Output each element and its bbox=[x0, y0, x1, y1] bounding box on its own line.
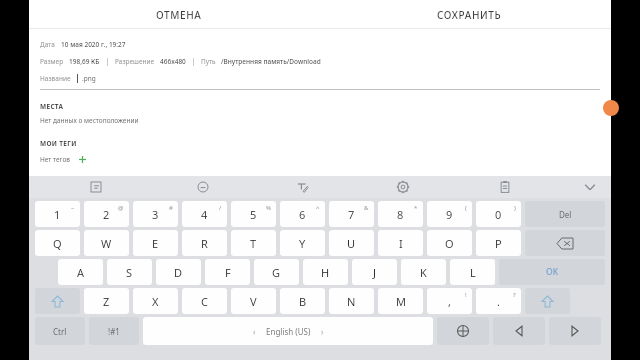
button[interactable]: 5 bbox=[231, 201, 276, 227]
staticText: X bbox=[152, 294, 159, 309]
button[interactable]: 6 bbox=[280, 201, 325, 227]
button[interactable]: O bbox=[427, 230, 472, 256]
button[interactable]: H bbox=[303, 259, 348, 285]
button[interactable]: !#1 bbox=[89, 317, 139, 345]
button[interactable]: ОТМЕНА bbox=[129, 0, 229, 29]
button[interactable]: I bbox=[378, 230, 423, 256]
staticText: Название bbox=[40, 74, 71, 83]
staticText: !#1 bbox=[108, 326, 120, 337]
button[interactable]: 0 bbox=[476, 201, 521, 227]
button[interactable]: D bbox=[156, 259, 201, 285]
staticText: Нет данных о местоположении bbox=[40, 116, 139, 125]
button[interactable]: Q bbox=[35, 230, 80, 256]
button[interactable]: M bbox=[378, 288, 423, 314]
button[interactable]: , bbox=[427, 288, 472, 314]
button[interactable]: U bbox=[329, 230, 374, 256]
button[interactable]: E bbox=[133, 230, 178, 256]
staticText: # bbox=[169, 204, 173, 212]
staticText: V bbox=[250, 294, 257, 309]
button[interactable]: Ctrl bbox=[35, 317, 85, 345]
button[interactable]: ‹ bbox=[143, 317, 433, 345]
staticText: ) bbox=[514, 204, 516, 212]
staticText: ‹ bbox=[253, 326, 256, 337]
button[interactable]: Clipboard bbox=[492, 176, 518, 198]
staticText: ^ bbox=[316, 204, 320, 212]
button[interactable]: . bbox=[476, 288, 521, 314]
button[interactable]: X bbox=[133, 288, 178, 314]
staticText: T bbox=[250, 236, 257, 251]
button[interactable]: V bbox=[231, 288, 276, 314]
staticText: 9 bbox=[446, 207, 453, 222]
staticText: D bbox=[174, 265, 183, 280]
staticText: Y bbox=[299, 236, 306, 251]
staticText: ( bbox=[465, 204, 467, 212]
staticText: СОХРАНИТЬ bbox=[437, 8, 502, 22]
staticText: , bbox=[448, 294, 451, 309]
button[interactable]: Sticker bbox=[83, 176, 109, 198]
staticText: 8 bbox=[397, 207, 404, 222]
button[interactable]: K bbox=[401, 259, 446, 285]
button[interactable]: N bbox=[329, 288, 374, 314]
button[interactable]: A bbox=[58, 259, 103, 285]
staticText: Ctrl bbox=[53, 326, 67, 337]
button[interactable]: P bbox=[476, 230, 521, 256]
button[interactable]: OK bbox=[499, 259, 605, 285]
button[interactable]: J bbox=[352, 259, 397, 285]
button[interactable]: Y bbox=[280, 230, 325, 256]
button[interactable]: S bbox=[107, 259, 152, 285]
button[interactable]: Shift bbox=[35, 288, 80, 314]
staticText: A bbox=[77, 265, 85, 280]
staticText: R bbox=[201, 236, 208, 251]
button[interactable]: Left bbox=[493, 317, 545, 345]
staticText: M bbox=[396, 294, 406, 309]
staticText: Нет тегов bbox=[40, 155, 70, 164]
staticText: OK bbox=[546, 266, 559, 278]
button[interactable]: Emoji bbox=[190, 176, 216, 198]
button[interactable]: BKSP bbox=[525, 230, 605, 256]
staticText: I bbox=[399, 236, 403, 251]
staticText: F bbox=[225, 265, 231, 280]
button[interactable]: Language bbox=[437, 317, 489, 345]
button[interactable]: 1 bbox=[35, 201, 80, 227]
button[interactable]: G bbox=[254, 259, 299, 285]
staticText: 3 bbox=[152, 207, 159, 222]
button[interactable]: L bbox=[450, 259, 495, 285]
button[interactable]: C bbox=[182, 288, 227, 314]
button[interactable]: 2 bbox=[84, 201, 129, 227]
staticText: P bbox=[495, 236, 502, 251]
staticText: Дата bbox=[40, 40, 55, 49]
button[interactable]: 4 bbox=[182, 201, 227, 227]
staticText: 2 bbox=[103, 207, 110, 222]
button[interactable]: R bbox=[182, 230, 227, 256]
staticText: B bbox=[299, 294, 307, 309]
staticText: 1 bbox=[54, 207, 61, 222]
button[interactable]: T bbox=[231, 230, 276, 256]
staticText: МОИ ТЕГИ bbox=[40, 139, 77, 148]
staticText: H bbox=[321, 265, 330, 280]
button[interactable]: СОХРАНИТЬ bbox=[414, 0, 524, 29]
button[interactable]: Del bbox=[525, 201, 605, 227]
button[interactable]: B bbox=[280, 288, 325, 314]
button[interactable]: Add tag bbox=[76, 153, 88, 165]
button[interactable]: Right bbox=[549, 317, 601, 345]
staticText: 4 bbox=[201, 207, 208, 222]
button[interactable]: F bbox=[205, 259, 250, 285]
button[interactable]: 9 bbox=[427, 201, 472, 227]
staticText: .png bbox=[82, 74, 96, 83]
staticText: МЕСТА bbox=[40, 102, 64, 111]
button[interactable]: Settings bbox=[390, 176, 416, 198]
button[interactable]: 7 bbox=[329, 201, 374, 227]
staticText: & bbox=[364, 204, 369, 212]
button[interactable]: Shift bbox=[525, 288, 570, 314]
staticText: ~ bbox=[71, 204, 75, 212]
staticText: Z bbox=[103, 294, 110, 309]
button[interactable]: Handwriting bbox=[289, 176, 315, 198]
button[interactable]: 8 bbox=[378, 201, 423, 227]
button[interactable]: W bbox=[84, 230, 129, 256]
staticText: ОТМЕНА bbox=[156, 8, 202, 22]
button[interactable]: Z bbox=[84, 288, 129, 314]
staticText: 6 bbox=[299, 207, 306, 222]
button[interactable]: 3 bbox=[133, 201, 178, 227]
staticText: @ bbox=[118, 204, 124, 212]
button[interactable]: Hide keyboard bbox=[577, 176, 603, 198]
